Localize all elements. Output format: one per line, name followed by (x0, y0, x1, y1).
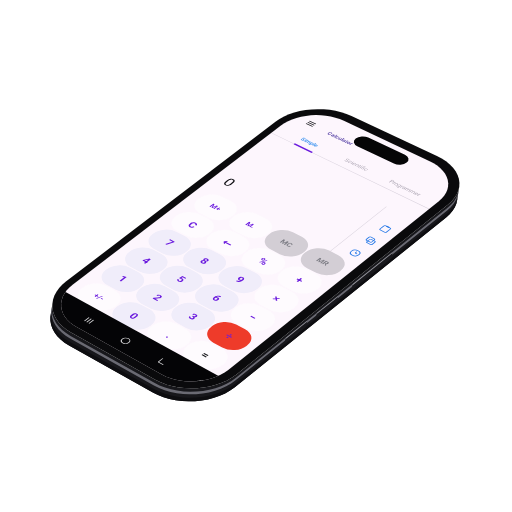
button[interactable]: Calculator app shown on a phone (0, 0, 512, 512)
